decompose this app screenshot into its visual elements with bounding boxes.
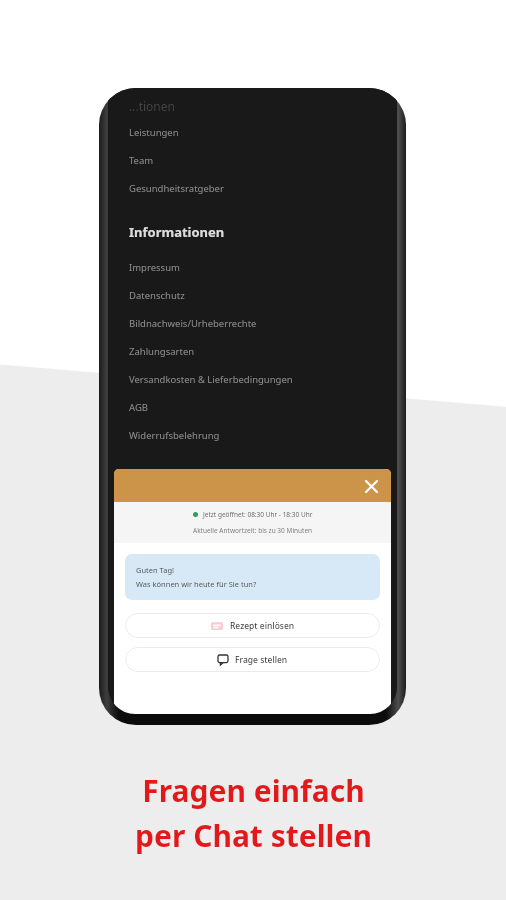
button[interactable]: Widerrufsbelehrung: [129, 429, 397, 442]
staticText: AGB: [129, 401, 148, 414]
staticText: Frage stellen: [235, 654, 288, 666]
button[interactable]: Bildnachweis/Urheberrechte: [129, 317, 397, 330]
button[interactable]: Zahlungsarten: [129, 345, 397, 358]
button[interactable]: ...tionen: [129, 98, 397, 114]
button[interactable]: Datenschutz: [129, 289, 397, 302]
staticText: Versandkosten & Lieferbedingungen: [129, 373, 293, 386]
staticText: Bildnachweis/Urheberrechte: [129, 317, 257, 330]
button[interactable]: Gesundheitsratgeber: [129, 182, 397, 195]
staticText: Datenschutz: [129, 289, 185, 302]
button[interactable]: Team: [129, 154, 397, 167]
staticText: Informationen: [129, 223, 225, 241]
button[interactable]: Frage stellen: [125, 647, 380, 672]
staticText: Jetzt geöffnet: 08:30 Uhr - 18:30 Uhr: [203, 510, 313, 519]
staticText: Aktuelle Antwortzeit: bis zu 30 Minuten: [193, 526, 313, 535]
button[interactable]: Rezept einlösen: [125, 613, 380, 638]
staticText: Was können wir heute für Sie tun?: [136, 579, 257, 589]
button[interactable]: AGB: [129, 401, 397, 414]
staticText: Widerrufsbelehrung: [129, 429, 220, 442]
button[interactable]: Leistungen: [129, 126, 397, 139]
staticText: Rezept einlösen: [230, 620, 295, 632]
staticText: per Chat stellen: [135, 815, 372, 856]
staticText: ...tionen: [129, 98, 175, 114]
staticText: Fragen einfach: [142, 770, 365, 811]
staticText: Guten Tag!: [136, 565, 175, 575]
staticText: Zahlungsarten: [129, 345, 195, 358]
button[interactable]: Impressum: [129, 261, 397, 274]
button[interactable]: Schließen: [360, 475, 382, 497]
staticText: Gesundheitsratgeber: [129, 182, 224, 195]
button[interactable]: Versandkosten & Lieferbedingungen: [129, 373, 397, 386]
staticText: Impressum: [129, 261, 180, 274]
staticText: Leistungen: [129, 126, 179, 139]
staticText: Team: [129, 154, 154, 167]
